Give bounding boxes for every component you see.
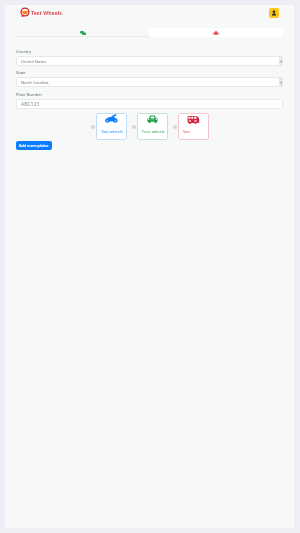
staticText: Country — [16, 49, 32, 54]
button[interactable]: Van — [178, 113, 209, 140]
button[interactable]: Add more plates — [16, 141, 52, 150]
staticText: Four wheels — [142, 129, 165, 134]
staticText: Text Wheels — [31, 9, 62, 16]
button[interactable]: Text Wheels — [20, 7, 62, 17]
staticText: ABC123 — [21, 101, 40, 108]
button[interactable]: Van — [173, 125, 177, 129]
button[interactable]: Account — [269, 8, 279, 18]
button[interactable]: Two wheels — [91, 125, 95, 129]
button[interactable]: United States — [16, 56, 283, 66]
button[interactable]: Vehicles tab — [149, 28, 283, 37]
staticText: North Carolina — [21, 80, 49, 85]
staticText: State — [16, 70, 26, 75]
button[interactable]: Four wheels — [137, 113, 168, 140]
staticText: Plate Number — [16, 92, 43, 97]
staticText: Add more plates — [19, 143, 49, 148]
button[interactable]: Two wheels — [96, 113, 127, 140]
button[interactable]: Four wheels — [132, 125, 136, 129]
button[interactable]: ABC123 — [16, 99, 283, 109]
staticText: Van — [183, 129, 191, 134]
staticText: Two wheels — [101, 129, 123, 134]
staticText: United States — [21, 59, 47, 64]
button[interactable]: Messages tab — [16, 28, 149, 37]
button[interactable]: North Carolina — [16, 77, 283, 87]
